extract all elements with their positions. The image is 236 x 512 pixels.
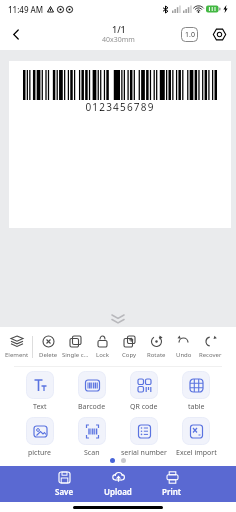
- staticText: Save: [55, 486, 74, 497]
- button[interactable]: Barcode: [66, 367, 118, 413]
- button[interactable]: Upload: [91, 466, 145, 502]
- button[interactable]: Undo: [170, 335, 197, 359]
- staticText: QR code: [130, 402, 158, 412]
- staticText: Single c...: [62, 351, 89, 359]
- button[interactable]: Copy: [116, 335, 143, 359]
- staticText: Scan: [84, 448, 100, 458]
- button[interactable]: Excel import: [170, 413, 222, 458]
- staticText: Print: [162, 486, 182, 497]
- staticText: Text: [33, 402, 47, 412]
- staticText: 1/1: [112, 23, 126, 35]
- button[interactable]: Text: [14, 367, 66, 413]
- staticText: serial number: [121, 448, 167, 458]
- staticText: Element: [5, 351, 29, 359]
- staticText: Undo: [176, 351, 192, 359]
- staticText: Barcode: [78, 402, 106, 412]
- button[interactable]: Single c...: [62, 335, 89, 359]
- button[interactable]: Save: [37, 466, 91, 502]
- staticText: 1.0: [185, 30, 195, 40]
- staticText: Recover: [199, 351, 222, 359]
- button[interactable]: Print: [145, 466, 199, 502]
- staticText: Copy: [122, 351, 137, 359]
- button[interactable]: Lock: [89, 335, 116, 359]
- staticText: 11:49 AM: [8, 4, 44, 15]
- staticText: Upload: [104, 486, 132, 497]
- button[interactable]: Recover: [197, 335, 224, 359]
- button[interactable]: Element: [2, 335, 32, 359]
- button[interactable]: Delete: [35, 335, 62, 359]
- button[interactable]: [210, 25, 228, 43]
- staticText: Lock: [96, 351, 109, 359]
- staticText: 40x30mm: [102, 35, 135, 45]
- button[interactable]: [6, 24, 26, 44]
- button[interactable]: QR code: [118, 367, 170, 413]
- staticText: table: [188, 402, 205, 412]
- button[interactable]: table: [170, 367, 222, 413]
- button[interactable]: Rotate: [143, 335, 170, 359]
- staticText: Delete: [39, 351, 58, 359]
- button[interactable]: Scan: [66, 413, 118, 458]
- staticText: Rotate: [147, 351, 166, 359]
- button[interactable]: picture: [14, 413, 66, 458]
- staticText: Excel import: [176, 448, 217, 458]
- staticText: 0123456789: [85, 100, 155, 114]
- button[interactable]: 1.0: [181, 27, 198, 42]
- staticText: picture: [28, 448, 52, 458]
- button[interactable]: serial number: [118, 413, 170, 458]
